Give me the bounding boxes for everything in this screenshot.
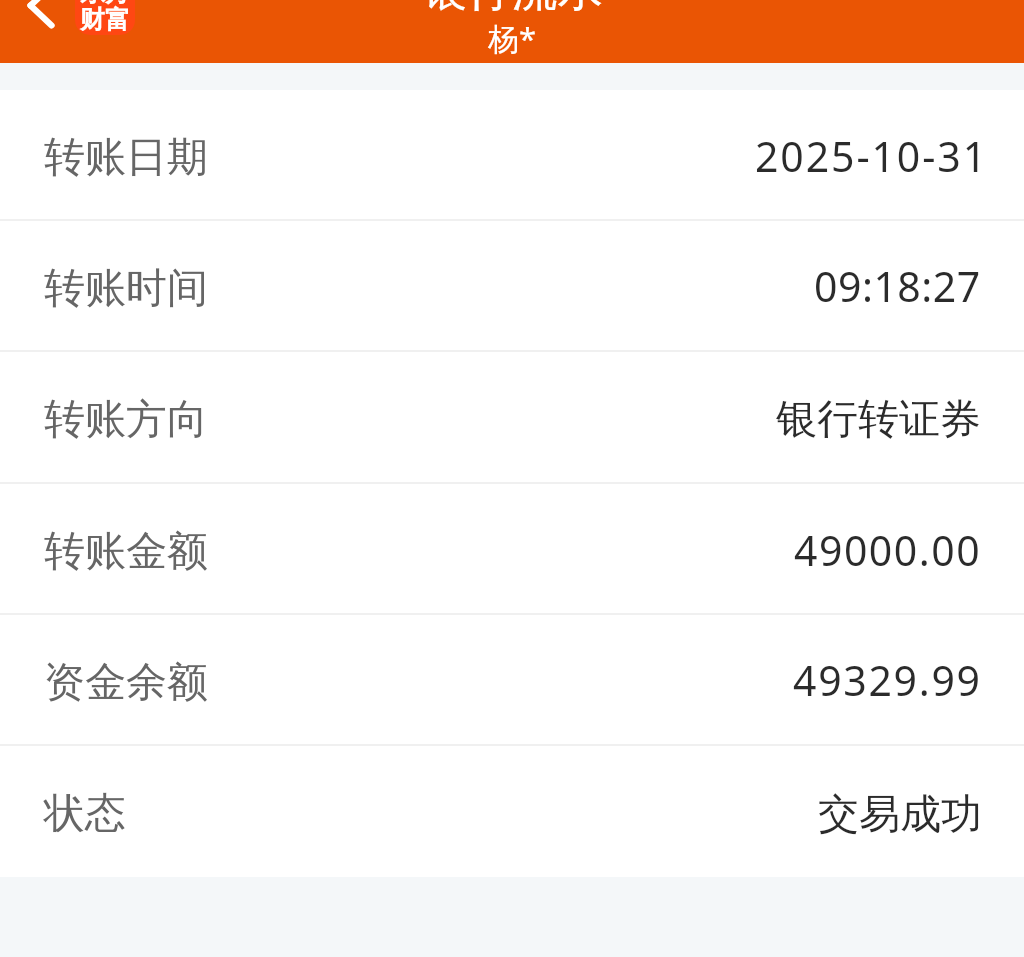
staticText: 2025-10-31	[755, 128, 989, 184]
staticText: 银行流水	[421, 0, 603, 18]
button[interactable]: 转账时间	[0, 221, 1024, 352]
staticText: 09:18:27	[814, 258, 981, 314]
staticText: 转账时间	[44, 263, 208, 315]
staticText: 交易成功	[818, 789, 982, 841]
staticText: 转账日期	[44, 132, 208, 184]
button[interactable]: 返回	[8, 0, 78, 63]
button[interactable]: 东方财富	[75, 0, 135, 35]
button[interactable]: 转账日期	[0, 90, 1024, 221]
staticText: 东方 财富	[80, 0, 130, 35]
staticText: 状态	[44, 788, 126, 840]
staticText: 49329.99	[793, 652, 982, 708]
staticText: 转账金额	[44, 526, 208, 578]
button[interactable]: 状态	[0, 746, 1024, 877]
staticText: 转账方向	[44, 394, 208, 446]
button[interactable]: 转账方向	[0, 352, 1024, 484]
staticText: 杨*	[488, 17, 537, 59]
staticText: 49000.00	[794, 522, 982, 578]
staticText: 银行转证券	[776, 394, 981, 446]
staticText: 资金余额	[44, 657, 208, 709]
button[interactable]: 资金余额	[0, 615, 1024, 746]
button[interactable]: 转账金额	[0, 484, 1024, 615]
